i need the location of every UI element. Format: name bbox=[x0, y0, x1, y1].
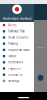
staticText: Alerts bbox=[8, 23, 16, 27]
button[interactable]: Settings bbox=[0, 78, 34, 84]
staticText: Contact Us bbox=[8, 73, 22, 76]
button[interactable]: Payments bbox=[0, 65, 34, 72]
staticText: Report an Issue bbox=[8, 48, 30, 52]
staticText: Transit bbox=[8, 54, 16, 58]
staticText: Fredericton Toolbox bbox=[3, 17, 31, 21]
staticText: Road Closures bbox=[8, 36, 28, 39]
button[interactable]: Garbage Day bbox=[0, 28, 34, 34]
staticText: Parking bbox=[8, 42, 18, 45]
button[interactable]: Report an Issue bbox=[0, 47, 34, 53]
button[interactable]: Contact Us bbox=[0, 72, 34, 78]
staticText: Recreation bbox=[8, 60, 23, 64]
staticText: Settings bbox=[8, 79, 19, 83]
staticText: Payments bbox=[8, 67, 20, 70]
button[interactable]: Recreation bbox=[0, 59, 34, 65]
staticText: Garbage Day bbox=[8, 29, 24, 33]
button[interactable]: Alerts bbox=[0, 22, 34, 28]
button[interactable]: Road Closures bbox=[0, 34, 34, 41]
button[interactable]: Parking bbox=[0, 41, 34, 47]
button[interactable]: Transit bbox=[0, 53, 34, 59]
